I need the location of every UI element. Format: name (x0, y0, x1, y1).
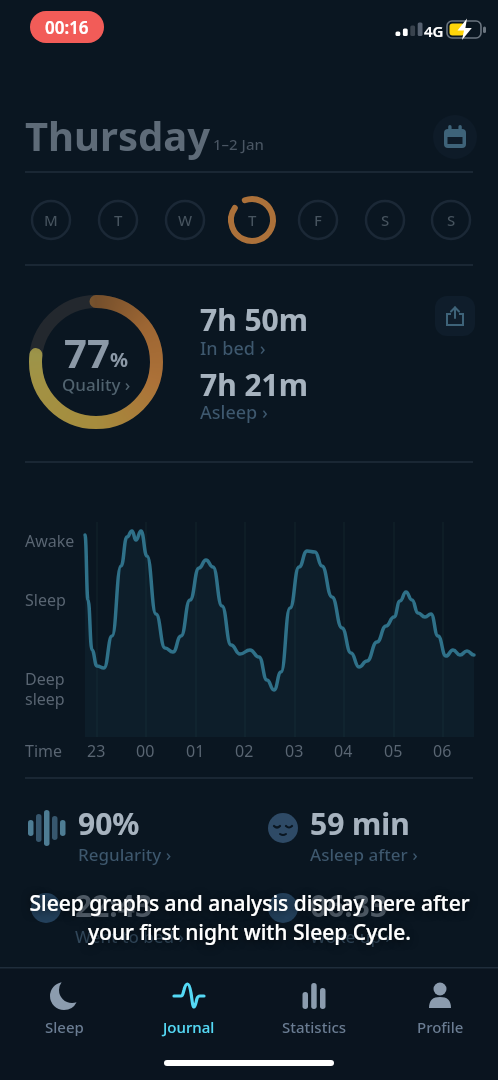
button[interactable]: F (294, 196, 342, 244)
staticText: your first night with Sleep Cycle. (88, 918, 411, 947)
staticText: 02 (235, 740, 254, 762)
staticText: Regularity › (78, 843, 172, 866)
staticText: 7h 21m (200, 364, 309, 405)
staticText: T (114, 210, 123, 230)
staticText: 05 (384, 740, 403, 762)
staticText: S (381, 210, 390, 230)
staticText: 06:33 (310, 885, 388, 926)
button[interactable]: 06:33 (265, 880, 485, 955)
staticText: Sleep graphs and analysis display here a… (29, 889, 470, 918)
staticText: 01 (186, 740, 205, 762)
button[interactable] (433, 115, 477, 159)
staticText: Asleep after › (310, 843, 418, 866)
staticText: S (447, 210, 456, 230)
button[interactable]: S (427, 196, 475, 244)
staticText: 77 (64, 325, 110, 379)
button[interactable]: Sleep (9, 975, 119, 1037)
staticText: 22:43 (75, 885, 153, 926)
button[interactable]: 77 (28, 294, 164, 430)
staticText: Statistics (282, 1017, 347, 1037)
button[interactable]: Profile (385, 975, 495, 1037)
button[interactable] (435, 296, 475, 336)
staticText: Sleep (25, 589, 66, 611)
staticText: 7h 50m (200, 299, 309, 340)
button[interactable]: Statistics (259, 975, 369, 1037)
staticText: Thursday (25, 108, 211, 162)
staticText: 03 (285, 740, 304, 762)
button[interactable]: W (161, 196, 209, 244)
button[interactable]: Journal (134, 975, 244, 1037)
staticText: Quality › (62, 373, 131, 396)
staticText: 1–2 Jan (213, 134, 264, 154)
staticText: T (248, 210, 257, 230)
staticText: 04 (334, 740, 353, 762)
button[interactable]: Asleep › (200, 400, 268, 425)
staticText: Woke up › (310, 925, 391, 948)
staticText: Journal (163, 1017, 215, 1037)
staticText: 59 min (310, 803, 410, 844)
button[interactable]: T (228, 196, 276, 244)
staticText: F (314, 210, 322, 230)
staticText: 00 (136, 740, 155, 762)
staticText: 4G (424, 21, 444, 41)
button[interactable]: 59 min (265, 795, 485, 870)
staticText: 00:16 (45, 16, 89, 39)
staticText: Deep sleep (25, 668, 65, 709)
staticText: 23 (87, 740, 106, 762)
staticText: W (178, 210, 193, 230)
staticText: Went to bed › (75, 925, 185, 948)
button[interactable]: In bed › (200, 336, 266, 361)
staticText: % (110, 346, 129, 373)
button[interactable]: M (27, 196, 75, 244)
staticText: Awake (25, 530, 75, 552)
staticText: 06 (433, 740, 452, 762)
staticText: Time (25, 740, 63, 762)
button[interactable]: 90% (25, 795, 245, 870)
staticText: M (44, 210, 58, 230)
staticText: Sleep (45, 1017, 84, 1037)
button[interactable]: T (94, 196, 142, 244)
button[interactable]: 00:16 (30, 11, 104, 43)
staticText: 90% (78, 803, 140, 844)
button[interactable]: S (361, 196, 409, 244)
button[interactable]: 22:43 (25, 880, 245, 955)
staticText: Profile (417, 1017, 464, 1037)
